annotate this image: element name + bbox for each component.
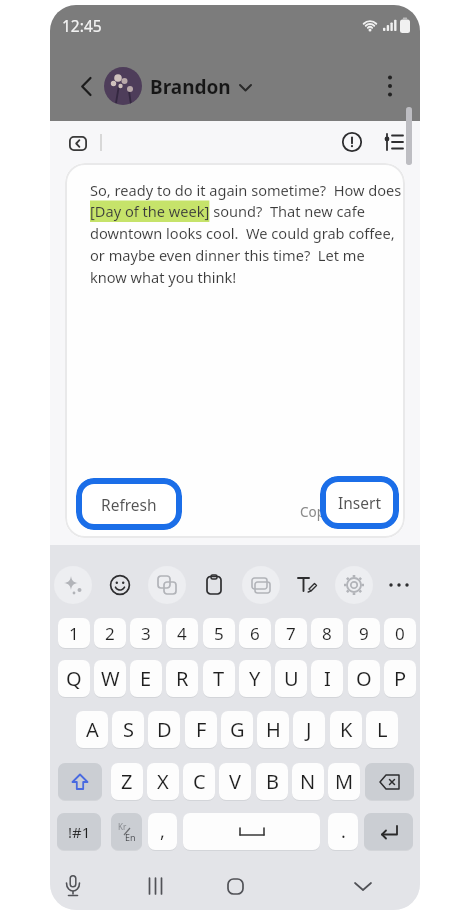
staticText: A — [86, 716, 99, 743]
staticText: P — [394, 665, 407, 692]
button[interactable] — [338, 128, 366, 156]
staticText: 6 — [250, 622, 260, 645]
staticText: 7 — [286, 622, 296, 645]
button[interactable]: Insert — [320, 476, 399, 529]
button[interactable]: N — [292, 763, 324, 800]
button[interactable]: 4 — [166, 618, 198, 648]
button[interactable] — [70, 70, 102, 102]
button[interactable] — [101, 566, 139, 604]
button[interactable]: V — [219, 763, 251, 800]
staticText: En — [125, 831, 136, 843]
button[interactable] — [364, 813, 413, 850]
button[interactable] — [348, 871, 378, 901]
staticText: O — [356, 665, 372, 692]
staticText: D — [157, 716, 172, 743]
staticText: 12:45 — [62, 15, 102, 36]
staticText: , — [160, 819, 165, 844]
button[interactable]: Q — [58, 660, 90, 697]
button[interactable]: E — [130, 660, 162, 697]
button[interactable] — [242, 566, 280, 604]
button[interactable]: 2 — [94, 618, 126, 648]
button[interactable]: D — [148, 711, 180, 748]
button[interactable] — [195, 566, 233, 604]
button[interactable]: Y — [239, 660, 271, 697]
staticText: X — [157, 768, 169, 795]
button[interactable] — [54, 566, 92, 604]
staticText: B — [266, 768, 279, 795]
button[interactable] — [335, 566, 373, 604]
staticText: 4 — [177, 622, 187, 645]
staticText: H — [266, 716, 281, 743]
staticText: Y — [249, 665, 261, 692]
button[interactable]: T — [203, 660, 235, 697]
button[interactable]: F — [185, 711, 217, 748]
button[interactable]: A — [76, 711, 108, 748]
button[interactable]: L — [366, 711, 398, 748]
button[interactable]: I — [311, 660, 343, 697]
button[interactable] — [380, 566, 418, 604]
button[interactable]: 8 — [311, 618, 343, 648]
staticText: W — [101, 665, 120, 692]
button[interactable] — [183, 813, 320, 850]
button[interactable] — [220, 871, 250, 901]
button[interactable] — [365, 763, 414, 800]
staticText: So, ready to do it again sometime? How d… — [90, 180, 402, 287]
staticText: 3 — [141, 622, 151, 645]
button[interactable]: Refresh — [76, 478, 182, 530]
button[interactable]: G — [221, 711, 253, 748]
button[interactable]: 6 — [239, 618, 271, 648]
staticText: 2 — [105, 622, 115, 645]
staticText: 5 — [214, 622, 224, 645]
button[interactable]: X — [147, 763, 179, 800]
button[interactable]: . — [328, 813, 358, 850]
button[interactable] — [104, 67, 142, 105]
button[interactable] — [63, 130, 93, 156]
button[interactable]: U — [275, 660, 307, 697]
button[interactable]: 7 — [275, 618, 307, 648]
staticText: F — [196, 716, 207, 743]
button[interactable]: , — [148, 813, 177, 850]
button[interactable]: 1 — [58, 618, 90, 648]
staticText: M — [335, 768, 354, 795]
button[interactable]: K — [330, 711, 362, 748]
button[interactable]: 0 — [384, 618, 416, 648]
staticText: Q — [66, 665, 82, 692]
button[interactable]: R — [166, 660, 198, 697]
button[interactable] — [375, 70, 405, 102]
staticText: 0 — [395, 622, 405, 645]
button[interactable]: Kr — [111, 813, 142, 850]
button[interactable] — [140, 871, 170, 901]
staticText: C — [193, 768, 206, 795]
button[interactable] — [380, 128, 408, 156]
staticText: S — [123, 716, 134, 743]
button[interactable]: C — [183, 763, 215, 800]
button[interactable]: Z — [111, 763, 143, 800]
button[interactable]: 9 — [348, 618, 380, 648]
staticText: G — [230, 716, 245, 743]
staticText: 1 — [69, 622, 79, 645]
staticText: Brandon — [150, 74, 231, 100]
button[interactable]: J — [293, 711, 325, 748]
staticText: Copy — [300, 503, 332, 521]
button[interactable]: S — [112, 711, 144, 748]
button[interactable]: P — [384, 660, 416, 697]
button[interactable] — [58, 871, 88, 901]
staticText: !#1 — [68, 822, 91, 842]
button[interactable]: O — [348, 660, 380, 697]
button[interactable]: !#1 — [57, 813, 101, 850]
staticText: E — [140, 665, 152, 692]
button[interactable]: B — [256, 763, 288, 800]
staticText: Kr — [118, 821, 127, 832]
staticText: I — [324, 665, 331, 692]
button[interactable]: 3 — [130, 618, 162, 648]
button[interactable]: W — [94, 660, 126, 697]
staticText: Insert — [338, 492, 381, 513]
button[interactable] — [288, 566, 326, 604]
button[interactable]: H — [257, 711, 289, 748]
button[interactable]: M — [328, 763, 360, 800]
button[interactable] — [148, 566, 186, 604]
staticText: R — [176, 665, 189, 692]
button[interactable] — [58, 763, 102, 800]
button[interactable]: 5 — [203, 618, 235, 648]
staticText: J — [306, 716, 312, 743]
